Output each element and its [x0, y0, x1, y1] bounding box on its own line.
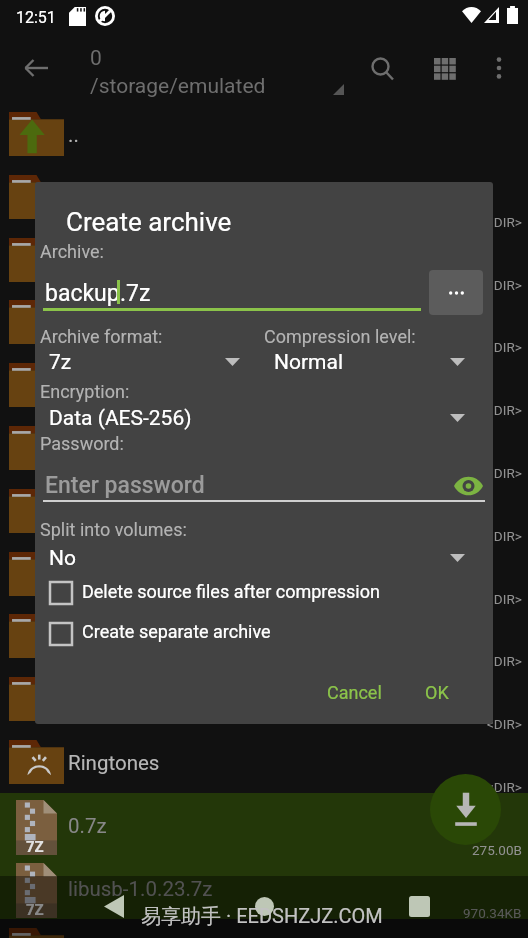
- staticText: Cancel: [327, 682, 382, 703]
- button[interactable]: Movies: [0, 479, 528, 542]
- staticText: Enter password: [45, 472, 205, 499]
- staticText: Normal: [274, 350, 344, 375]
- staticText: No: [49, 546, 76, 571]
- button[interactable]: Pictures: [0, 667, 528, 730]
- staticText: <DIR>: [487, 653, 522, 669]
- button[interactable]: Toggle: [42, 615, 79, 652]
- staticText: Movies: [68, 500, 134, 524]
- button[interactable]: Documents: [0, 353, 528, 416]
- staticText: /storage/emulated: [90, 74, 266, 99]
- button[interactable]: Change view: [422, 46, 468, 92]
- button[interactable]: Show password: [446, 464, 490, 508]
- staticText: Encryption:: [40, 381, 130, 402]
- staticText: 7Z: [26, 901, 44, 919]
- staticText: <DIR>: [487, 779, 522, 795]
- button[interactable]: 7Z: [0, 793, 528, 856]
- staticText: 7z: [49, 350, 72, 375]
- button[interactable]: More options: [477, 46, 521, 90]
- button[interactable]: OK: [414, 674, 472, 712]
- button[interactable]: Toggle: [42, 574, 79, 611]
- staticText: Split into volumes:: [40, 519, 187, 540]
- button[interactable]: Back: [88, 880, 140, 932]
- staticText: <DIR>: [487, 716, 522, 732]
- button[interactable]: Cancel: [316, 674, 398, 712]
- staticText: Documents: [68, 374, 173, 398]
- staticText: Compression level:: [264, 326, 416, 347]
- staticText: backup: [45, 280, 120, 307]
- staticText: libusb-1.0.23.7z: [68, 877, 213, 901]
- button[interactable]: Ringtones: [0, 730, 528, 793]
- staticText: ..: [68, 123, 79, 147]
- staticText: 7Z: [26, 838, 44, 856]
- button[interactable]: Music: [0, 542, 528, 605]
- button[interactable]: Navigate up: [14, 46, 58, 90]
- staticText: <DIR>: [487, 402, 522, 418]
- staticText: 970.34KB: [463, 905, 522, 921]
- button[interactable]: Search: [360, 46, 406, 92]
- staticText: <DIR>: [487, 465, 522, 481]
- button[interactable]: Home: [238, 880, 290, 932]
- staticText: DCIM: [68, 311, 119, 335]
- staticText: Archive:: [40, 241, 104, 262]
- staticText: Create separate archive: [82, 621, 271, 642]
- staticText: <DIR>: [487, 528, 522, 544]
- staticText: Create archive: [66, 207, 232, 237]
- staticText: 12:51: [16, 8, 56, 27]
- staticText: 0: [90, 46, 102, 71]
- staticText: Delete source files after compression: [82, 581, 380, 602]
- staticText: Notifications: [68, 625, 185, 649]
- staticText: Password:: [40, 433, 124, 454]
- staticText: Ringtones: [68, 751, 160, 775]
- button[interactable]: Android: [0, 228, 528, 291]
- button[interactable]: DCIM: [0, 290, 528, 353]
- staticText: Android: [68, 249, 140, 273]
- button[interactable]: Recent apps: [393, 880, 445, 932]
- button[interactable]: Download: [430, 774, 501, 845]
- staticText: 易享助手 · EEDSHZJZ.COM: [141, 904, 383, 929]
- button[interactable]: Notifications: [0, 604, 528, 667]
- staticText: <DIR>: [487, 591, 522, 607]
- staticText: <DIR>: [487, 214, 522, 230]
- staticText: 0.7z: [68, 814, 107, 838]
- staticText: .7z: [120, 280, 151, 307]
- button[interactable]: Telegram: [0, 918, 528, 938]
- button[interactable]: Download: [0, 416, 528, 479]
- staticText: Archive format:: [40, 326, 163, 347]
- staticText: <DIR>: [487, 339, 522, 355]
- staticText: 275.00B: [472, 842, 522, 858]
- staticText: <DIR>: [487, 277, 522, 293]
- button[interactable]: Browse: [429, 270, 483, 315]
- staticText: Data (AES-256): [49, 406, 192, 431]
- staticText: Music: [68, 563, 124, 587]
- button[interactable]: ..: [0, 102, 528, 165]
- staticText: Download: [68, 437, 160, 461]
- staticText: OK: [425, 682, 449, 703]
- button[interactable]: Alarms: [0, 165, 528, 228]
- button[interactable]: 7Z: [0, 856, 528, 919]
